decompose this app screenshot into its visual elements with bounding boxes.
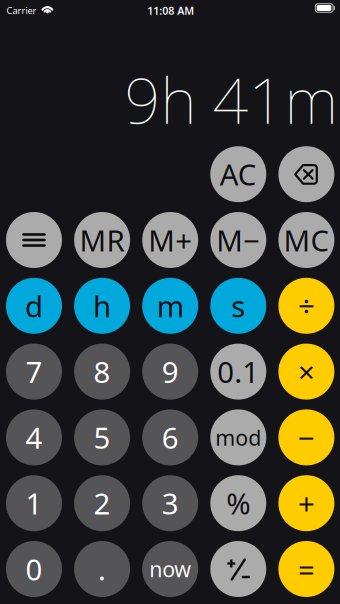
staticText: . [98, 549, 106, 588]
staticText: 9 [162, 352, 179, 391]
button[interactable]: + [278, 475, 334, 531]
staticText: % [226, 484, 250, 523]
button[interactable]: Toggle sign [210, 541, 266, 597]
staticText: 0.1 [217, 352, 259, 391]
staticText: mod [215, 423, 261, 451]
button[interactable]: h [74, 278, 130, 334]
button[interactable]: 9 [142, 344, 198, 400]
staticText: 4 [25, 418, 42, 457]
staticText: m [157, 286, 184, 325]
staticText: = [298, 549, 315, 588]
button[interactable]: MR [74, 212, 130, 268]
staticText: 3 [162, 484, 179, 523]
button[interactable]: 5 [74, 409, 130, 465]
button[interactable]: % [210, 475, 266, 531]
button[interactable]: Delete [278, 146, 334, 202]
button[interactable]: M− [210, 212, 266, 268]
staticText: M− [216, 220, 260, 259]
button[interactable]: 1 [6, 475, 62, 531]
button[interactable]: × [278, 344, 334, 400]
staticText: h [93, 286, 111, 325]
button[interactable]: 0.1 [210, 344, 266, 400]
staticText: 11:08 AM [147, 3, 194, 18]
staticText: 6 [162, 418, 179, 457]
button[interactable]: mod [210, 409, 266, 465]
staticText: M+ [148, 220, 192, 259]
button[interactable]: = [278, 541, 334, 597]
staticText: s [231, 286, 245, 325]
staticText: 0 [25, 549, 42, 588]
button[interactable]: M+ [142, 212, 198, 268]
staticText: MR [80, 220, 125, 259]
button[interactable]: now [142, 541, 198, 597]
button[interactable]: MC [278, 212, 334, 268]
staticText: × [298, 352, 315, 391]
button[interactable]: 0 [6, 541, 62, 597]
staticText: 2 [94, 484, 111, 523]
staticText: 7 [25, 352, 42, 391]
button[interactable]: Menu [6, 212, 62, 268]
staticText: Carrier [6, 4, 36, 16]
staticText: − [298, 418, 315, 457]
staticText: ÷ [298, 286, 315, 325]
staticText: AC [220, 155, 257, 194]
button[interactable]: . [74, 541, 130, 597]
staticText: now [149, 555, 191, 583]
button[interactable]: 2 [74, 475, 130, 531]
button[interactable]: m [142, 278, 198, 334]
button[interactable]: 3 [142, 475, 198, 531]
button[interactable]: ÷ [278, 278, 334, 334]
button[interactable]: − [278, 409, 334, 465]
button[interactable]: 8 [74, 344, 130, 400]
button[interactable]: AC [210, 146, 266, 202]
button[interactable]: 6 [142, 409, 198, 465]
button[interactable]: 4 [6, 409, 62, 465]
button[interactable]: 7 [6, 344, 62, 400]
button[interactable]: s [210, 278, 266, 334]
staticText: 8 [94, 352, 111, 391]
staticText: 1 [25, 484, 42, 523]
button[interactable]: d [6, 278, 62, 334]
staticText: + [298, 484, 315, 523]
staticText: MC [283, 220, 329, 259]
staticText: 9h 41m [124, 58, 337, 141]
staticText: d [25, 286, 43, 325]
staticText: 5 [94, 418, 111, 457]
